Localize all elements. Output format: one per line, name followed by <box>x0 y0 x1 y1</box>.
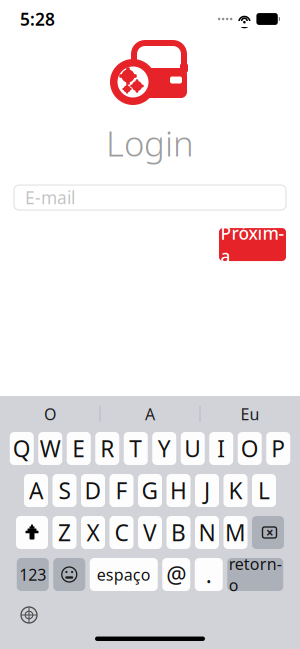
staticText: Z <box>58 517 71 547</box>
staticText: . <box>206 559 212 589</box>
staticText: F <box>115 475 127 505</box>
staticText: P <box>271 433 285 463</box>
button[interactable]: A <box>100 401 199 427</box>
staticText: U <box>184 433 201 463</box>
button[interactable]: C <box>109 516 133 549</box>
staticText: C <box>114 517 128 547</box>
staticText: @ <box>166 559 186 589</box>
button[interactable]: Y <box>152 432 176 465</box>
staticText: A <box>29 475 43 505</box>
button[interactable]: @ <box>162 558 190 591</box>
button[interactable]: Delete <box>252 516 284 549</box>
staticText: G <box>141 475 158 505</box>
staticText: I <box>217 433 225 463</box>
staticText: K <box>228 475 242 505</box>
button[interactable]: . <box>195 558 223 591</box>
button[interactable]: J <box>195 474 219 507</box>
staticText: S <box>58 475 70 505</box>
button[interactable]: T <box>124 432 148 465</box>
staticText: Eu <box>240 403 259 425</box>
staticText: H <box>170 475 187 505</box>
button[interactable]: M <box>223 516 247 549</box>
button[interactable]: Change keyboard <box>14 600 44 630</box>
button[interactable]: O <box>238 432 262 465</box>
staticText: J <box>204 475 210 505</box>
button[interactable]: B <box>166 516 190 549</box>
button[interactable]: retorno <box>227 558 283 591</box>
staticText: V <box>143 517 157 547</box>
button[interactable]: O <box>0 401 99 427</box>
staticText: O <box>44 403 56 425</box>
staticText: T <box>129 433 142 463</box>
button[interactable]: I <box>209 432 233 465</box>
button[interactable]: Eu <box>200 401 299 427</box>
staticText: 5:28 <box>20 7 55 30</box>
staticText: retorno <box>229 553 282 596</box>
staticText: X <box>86 517 99 547</box>
staticText: D <box>84 475 101 505</box>
button[interactable]: Z <box>52 516 76 549</box>
staticText: × <box>266 524 274 541</box>
button[interactable]: K <box>223 474 247 507</box>
staticText: A <box>145 403 155 425</box>
staticText: W <box>40 433 61 463</box>
staticText: Próxima <box>220 221 284 267</box>
button[interactable]: L <box>252 474 276 507</box>
button[interactable]: E-mail <box>14 185 286 210</box>
button[interactable]: Q <box>10 432 34 465</box>
button[interactable]: E <box>67 432 91 465</box>
button[interactable]: A <box>24 474 48 507</box>
staticText: R <box>100 433 114 463</box>
staticText: 123 <box>19 564 46 585</box>
button[interactable]: D <box>81 474 105 507</box>
button[interactable]: Shift <box>16 516 48 549</box>
button[interactable]: P <box>266 432 290 465</box>
staticText: Y <box>158 433 171 463</box>
button[interactable]: V <box>138 516 162 549</box>
button[interactable]: Emoji <box>53 558 85 591</box>
staticText: N <box>198 517 215 547</box>
button[interactable]: G <box>138 474 162 507</box>
button[interactable]: X <box>81 516 105 549</box>
staticText: E <box>72 433 85 463</box>
button[interactable]: F <box>109 474 133 507</box>
staticText: espaço <box>97 564 151 585</box>
button[interactable]: S <box>52 474 76 507</box>
staticText: B <box>171 517 186 547</box>
staticText: Q <box>13 433 31 463</box>
button[interactable]: R <box>95 432 119 465</box>
staticText: L <box>258 475 270 505</box>
button[interactable]: U <box>181 432 205 465</box>
staticText: E-mail <box>25 186 75 209</box>
button[interactable]: H <box>166 474 190 507</box>
staticText: O <box>241 433 259 463</box>
staticText: M <box>225 517 246 547</box>
button[interactable]: Próxima <box>219 228 286 261</box>
staticText: Login <box>106 120 194 166</box>
button[interactable]: 123 <box>17 558 49 591</box>
button[interactable]: espaço <box>90 558 158 591</box>
button[interactable]: W <box>38 432 62 465</box>
button[interactable]: N <box>195 516 219 549</box>
